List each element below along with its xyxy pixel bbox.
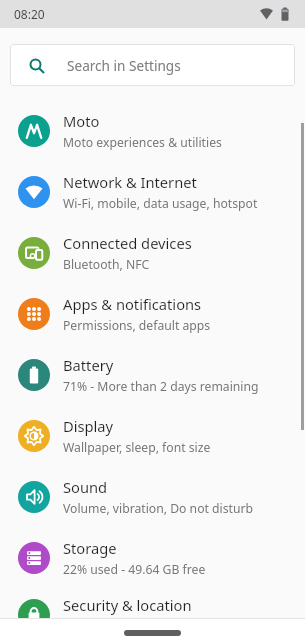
staticText: Screen lock, fingerprint — [63, 618, 196, 635]
staticText: Volume, vibration, Do not disturb — [63, 500, 254, 517]
button[interactable]: Display — [0, 405, 305, 466]
button[interactable]: Storage — [0, 527, 305, 588]
staticText: Wallpaper, sleep, font size — [63, 439, 211, 456]
button[interactable]: Battery — [0, 344, 305, 405]
staticText: Network & Internet — [63, 172, 197, 192]
staticText: 08:20 — [14, 6, 45, 22]
staticText: Moto experiences & utilities — [63, 134, 222, 151]
staticText: Security & location — [63, 595, 192, 615]
staticText: Battery — [63, 355, 114, 375]
button[interactable] — [124, 630, 181, 636]
staticText: Bluetooth, NFC — [63, 256, 150, 273]
staticText: 71% - More than 2 days remaining — [63, 378, 259, 395]
staticText: Apps & notifications — [63, 294, 202, 314]
staticText: Wi-Fi, mobile, data usage, hotspot — [63, 195, 258, 212]
button[interactable]: Apps & notifications — [0, 283, 305, 344]
button[interactable]: Sound — [0, 466, 305, 527]
staticText: Connected devices — [63, 233, 192, 253]
button[interactable]: Search in Settings — [10, 44, 295, 86]
staticText: Permissions, default apps — [63, 317, 211, 334]
button[interactable]: Moto — [0, 100, 305, 161]
button[interactable]: Connected devices — [0, 222, 305, 283]
button[interactable]: Network & Internet — [0, 161, 305, 222]
staticText: Moto — [63, 111, 100, 131]
button[interactable]: Security & location — [0, 588, 305, 641]
staticText: Display — [63, 416, 114, 436]
staticText: Search in Settings — [67, 56, 181, 75]
staticText: Storage — [63, 538, 117, 558]
staticText: 22% used - 49.64 GB free — [63, 561, 206, 578]
staticText: Sound — [63, 477, 108, 497]
